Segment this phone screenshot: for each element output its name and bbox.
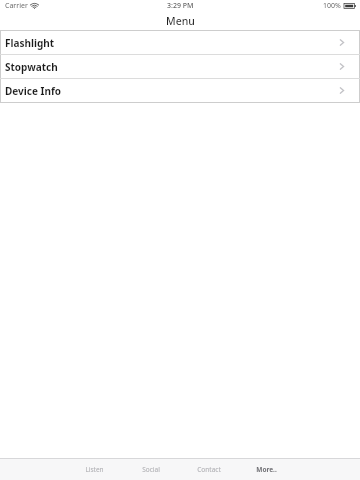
button[interactable]: Flashlight bbox=[0, 31, 360, 54]
button[interactable]: Device Info bbox=[0, 79, 360, 102]
button[interactable]: More.. bbox=[240, 459, 292, 480]
staticText: More.. bbox=[256, 465, 277, 474]
button[interactable]: Listen bbox=[68, 459, 120, 480]
staticText: Device Info bbox=[5, 84, 339, 98]
staticText: Listen bbox=[85, 465, 104, 474]
staticText: Menu bbox=[166, 14, 195, 28]
staticText: Stopwatch bbox=[5, 60, 339, 74]
staticText: Contact bbox=[197, 465, 221, 474]
button[interactable]: Contact bbox=[183, 459, 235, 480]
staticText: Carrier bbox=[5, 1, 28, 11]
staticText: 3:29 PM bbox=[167, 1, 194, 11]
staticText: Flashlight bbox=[5, 36, 339, 50]
staticText: 100% bbox=[323, 1, 341, 11]
staticText: Social bbox=[142, 465, 160, 474]
button[interactable]: Stopwatch bbox=[0, 55, 360, 78]
button[interactable]: Social bbox=[125, 459, 177, 480]
